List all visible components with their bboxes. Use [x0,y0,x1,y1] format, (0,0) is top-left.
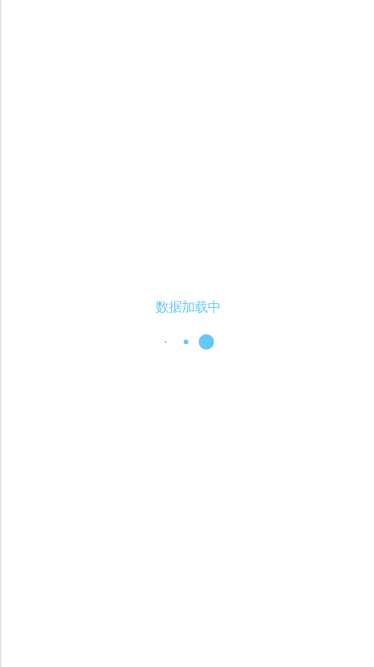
staticText: 数据加载中 [156,299,221,315]
